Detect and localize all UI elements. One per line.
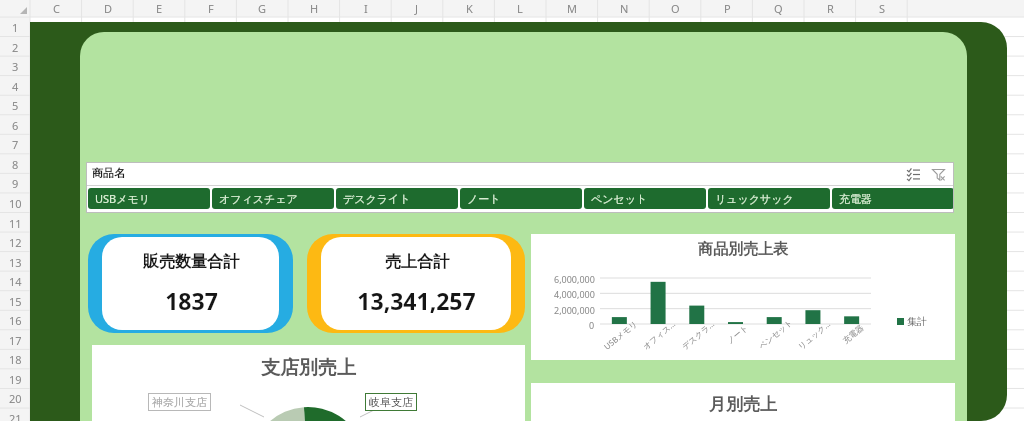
staticText: リュック… (795, 317, 833, 351)
staticText: 4,000,000 (554, 288, 595, 300)
staticText: I (364, 1, 368, 16)
staticText: 集計 (907, 315, 927, 328)
button[interactable]: 販売数量合計 (88, 234, 293, 333)
staticText: デスクライト (343, 192, 411, 206)
staticText: N (620, 1, 629, 16)
staticText: R (827, 1, 834, 16)
staticText: ノート (467, 192, 501, 206)
staticText: 5 (12, 98, 19, 113)
staticText: 岐阜支店 (369, 395, 413, 409)
staticText: 充電器 (841, 322, 865, 346)
staticText: C (53, 1, 60, 16)
staticText: リュックサック (715, 192, 794, 206)
button[interactable]: USBメモリ (88, 188, 210, 209)
staticText: 月別売上 (709, 394, 777, 415)
staticText: 商品別売上表 (698, 240, 788, 259)
staticText: ペンセット (591, 192, 648, 206)
button[interactable]: フィルターのクリア (927, 165, 949, 184)
button[interactable]: ノート (460, 188, 582, 209)
staticText: 19 (9, 372, 22, 387)
staticText: 2,000,000 (554, 304, 595, 316)
button[interactable]: 充電器 (832, 188, 954, 209)
staticText: 11 (9, 216, 22, 231)
staticText: USBメモリ (601, 317, 640, 352)
staticText: 売上合計 (385, 252, 449, 272)
staticText: USBメモリ (95, 191, 151, 206)
staticText: 16 (9, 313, 22, 328)
staticText: O (671, 1, 680, 16)
staticText: 12 (9, 235, 22, 250)
button[interactable]: リュックサック (708, 188, 830, 209)
staticText: 6,000,000 (554, 273, 595, 285)
staticText: 神奈川支店 (152, 395, 207, 409)
staticText: 3 (12, 59, 19, 74)
staticText: S (879, 1, 886, 16)
staticText: 2 (12, 40, 19, 55)
staticText: 販売数量合計 (143, 252, 239, 272)
button[interactable]: デスクライト (336, 188, 458, 209)
staticText: G (258, 1, 267, 16)
staticText: M (567, 1, 577, 16)
staticText: オフィスチェア (219, 192, 298, 206)
staticText: 13,341,257 (357, 285, 476, 316)
button[interactable]: 売上合計 (307, 234, 525, 333)
staticText: 8 (12, 157, 19, 172)
staticText: 7 (12, 137, 19, 152)
staticText: L (517, 1, 523, 16)
staticText: P (724, 1, 731, 16)
button[interactable]: オフィスチェア (212, 188, 334, 209)
button[interactable]: 商品別売上表 (531, 234, 955, 360)
staticText: 0 (589, 319, 595, 331)
staticText: 9 (12, 176, 19, 191)
staticText: E (156, 1, 163, 16)
staticText: 14 (9, 274, 22, 289)
staticText: H (310, 1, 319, 16)
staticText: 充電器 (839, 192, 872, 206)
staticText: 13 (9, 255, 22, 270)
staticText: 20 (9, 391, 22, 406)
staticText: ノート (725, 322, 750, 346)
staticText: F (208, 1, 214, 16)
staticText: 15 (9, 294, 22, 309)
staticText: 1 (12, 20, 19, 35)
staticText: 支店別売上 (261, 356, 356, 380)
staticText: 6 (12, 118, 19, 133)
staticText: Q (774, 1, 783, 16)
staticText: 18 (9, 352, 22, 367)
button[interactable]: 支店別売上 (92, 345, 525, 421)
staticText: J (415, 1, 419, 16)
staticText: 17 (9, 333, 22, 348)
staticText: オフィス… (640, 317, 678, 351)
staticText: 10 (9, 196, 22, 211)
button[interactable]: 複数選択 (902, 165, 924, 184)
button[interactable]: 月別売上 (531, 383, 955, 421)
staticText: D (104, 1, 113, 16)
button[interactable]: ペンセット (584, 188, 706, 209)
staticText: 4 (12, 79, 19, 94)
staticText: 1837 (165, 285, 218, 316)
staticText: K (466, 1, 473, 16)
staticText: デスクラ… (679, 317, 717, 351)
staticText: 商品名 (92, 166, 125, 180)
staticText: 21 (9, 411, 22, 421)
staticText: ペンセット (757, 317, 794, 351)
